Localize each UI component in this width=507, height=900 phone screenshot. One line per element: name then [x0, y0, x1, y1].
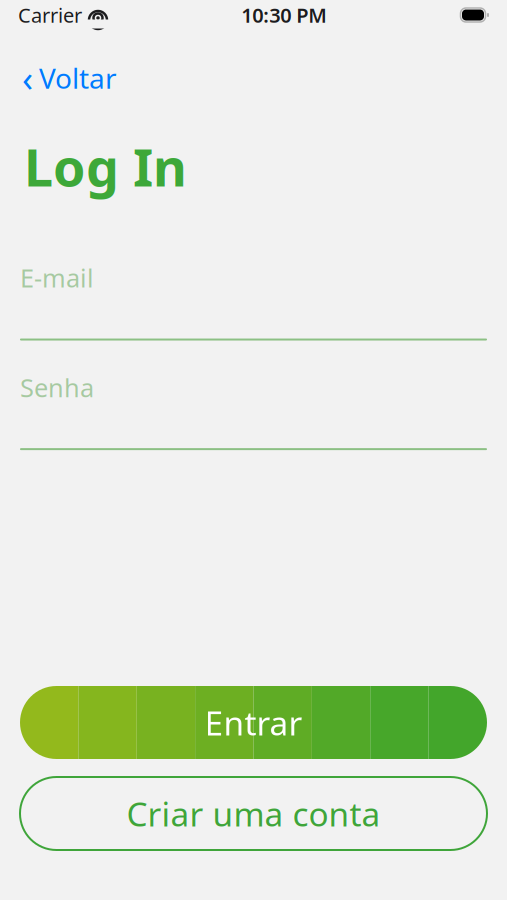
staticText: Entrar [204, 700, 302, 745]
staticText: ‹ [22, 54, 33, 102]
button[interactable]: Criar uma conta [20, 777, 487, 850]
staticText: E-mail [20, 261, 94, 294]
staticText: Voltar [39, 59, 117, 96]
staticText: Log In [24, 132, 187, 201]
button[interactable]: Entrar [20, 686, 487, 759]
staticText: Senha [20, 370, 94, 404]
staticText: 10:30 PM [241, 2, 327, 28]
button[interactable]: ‹ [0, 48, 139, 108]
staticText: Carrier [18, 2, 82, 28]
staticText: Criar uma conta [126, 791, 380, 836]
